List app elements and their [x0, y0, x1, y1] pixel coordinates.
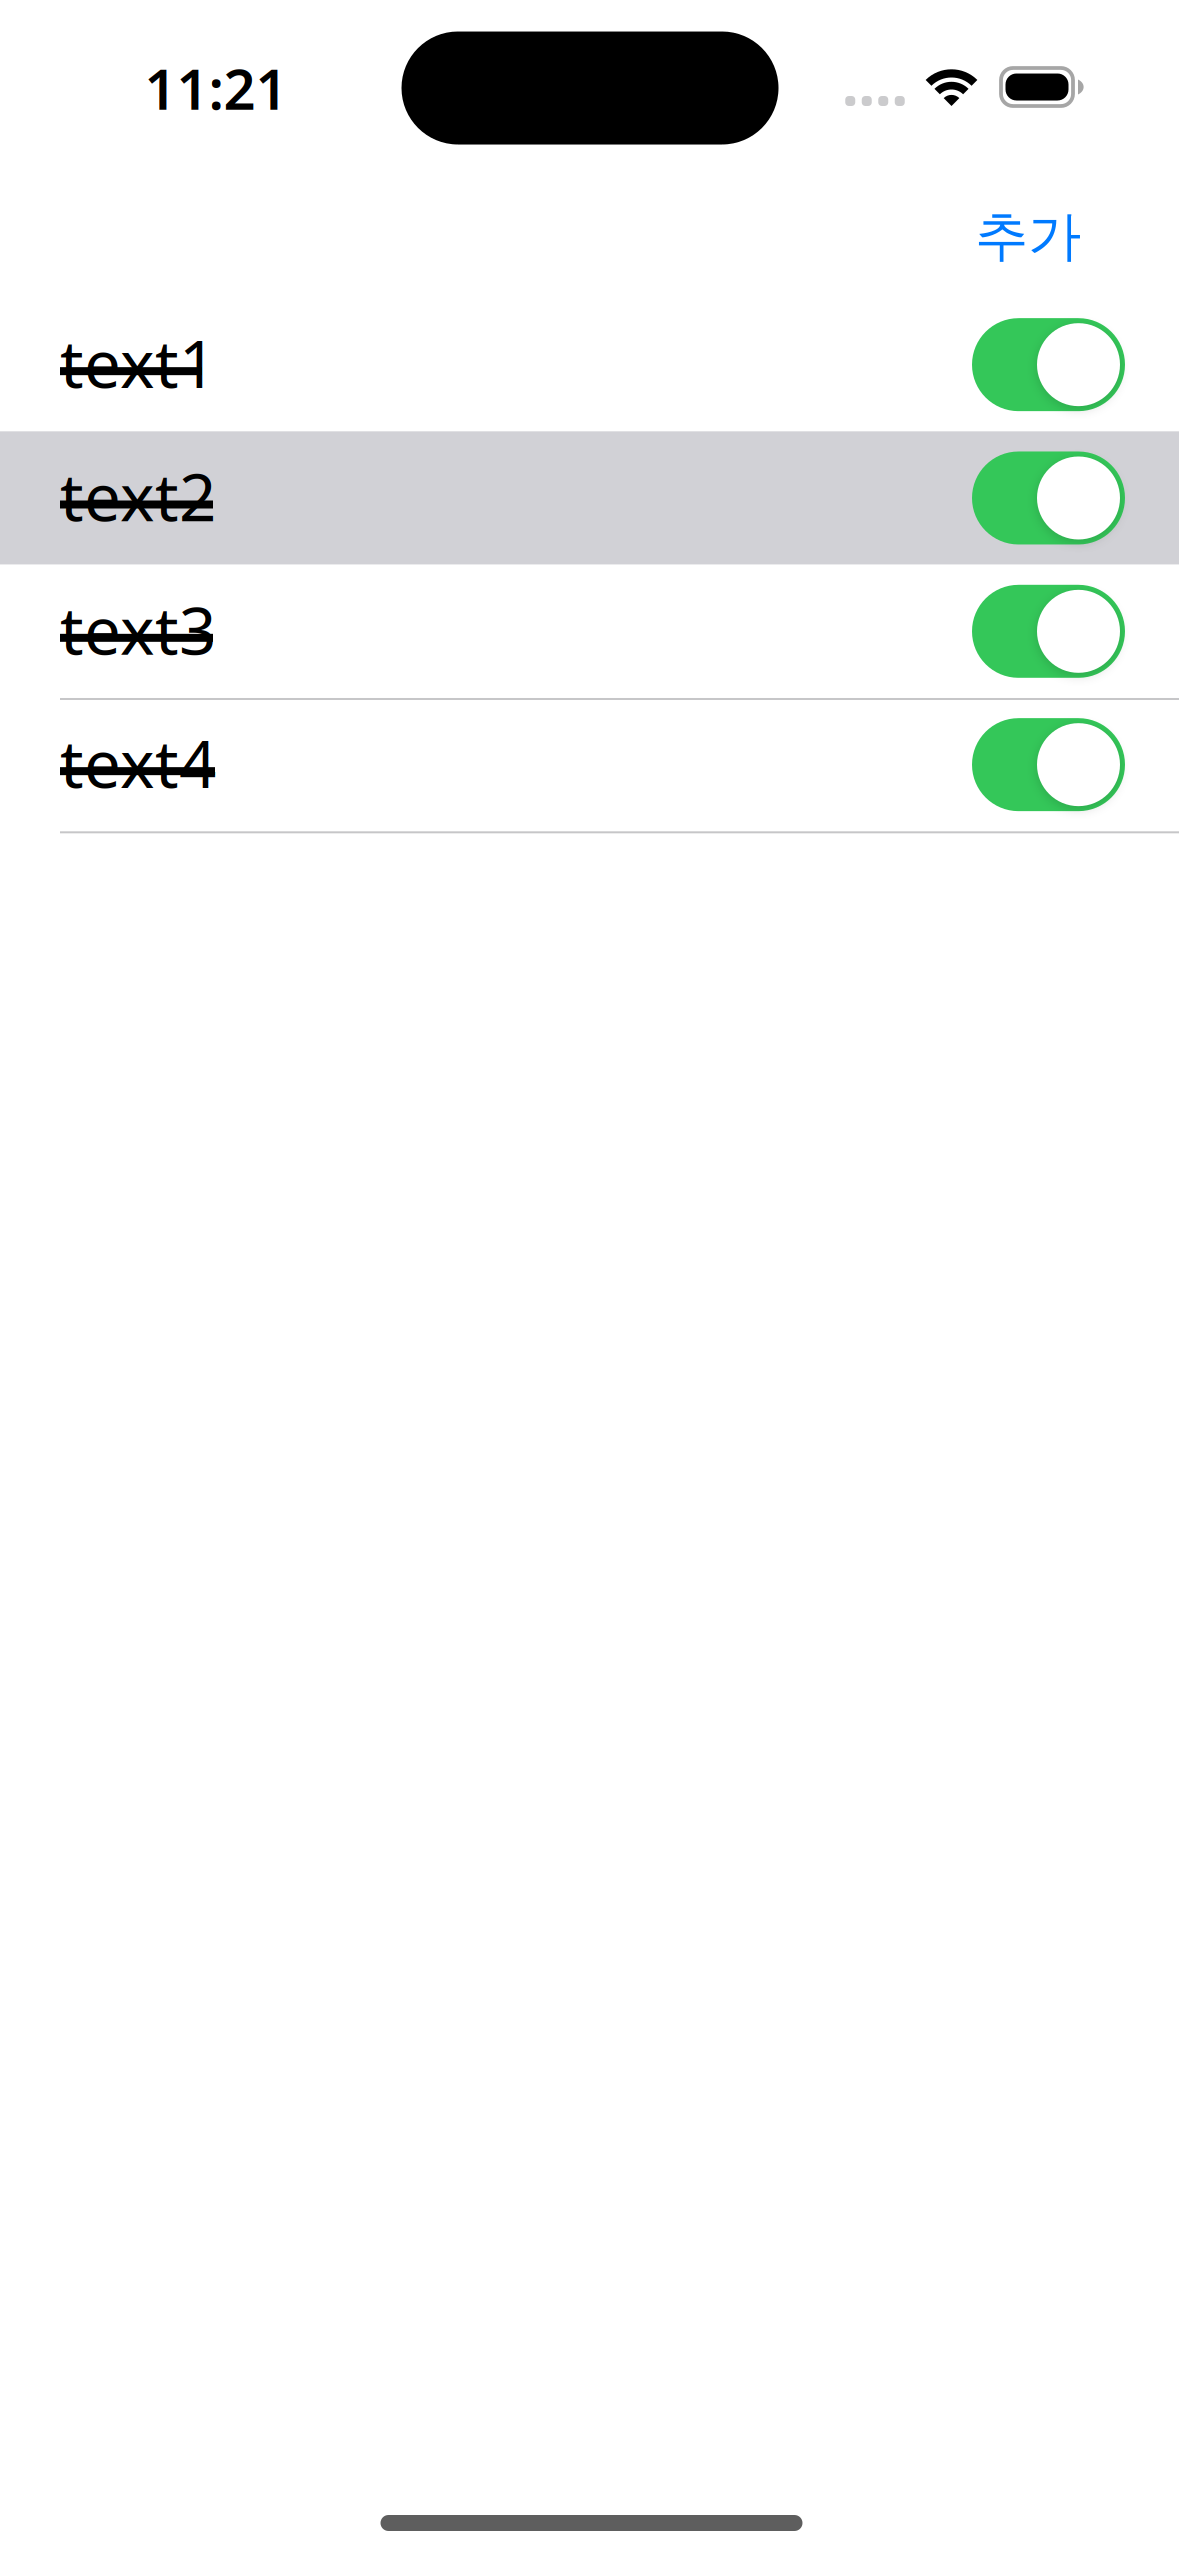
button[interactable]: text2 done toggle, on	[972, 451, 1125, 544]
button[interactable]: text3	[0, 565, 1179, 698]
staticText: text2	[60, 453, 216, 539]
button[interactable]: text1	[0, 298, 1179, 431]
button[interactable]: text3 done toggle, on	[972, 585, 1125, 678]
button[interactable]: 추가	[962, 170, 1094, 302]
button[interactable]: text2	[0, 431, 1179, 565]
staticText: text1	[60, 319, 216, 406]
staticText: text4	[60, 719, 216, 806]
button[interactable]: text4 done toggle, on	[972, 718, 1125, 811]
button[interactable]: text4	[0, 698, 1179, 831]
staticText: text3	[60, 586, 216, 673]
button[interactable]: text1 done toggle, on	[972, 318, 1125, 411]
staticText: 11:21	[144, 51, 287, 125]
staticText: 추가	[975, 204, 1081, 269]
